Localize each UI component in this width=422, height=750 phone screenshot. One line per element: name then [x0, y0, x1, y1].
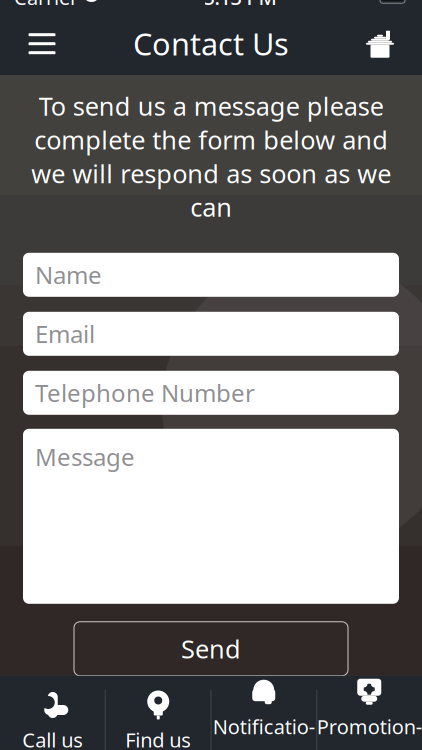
button[interactable]: Name: [23, 253, 399, 297]
staticText: Contact Us: [133, 23, 289, 64]
staticText: Call us: [22, 726, 83, 750]
staticText: Telephone Number: [35, 377, 255, 409]
button[interactable]: Notifications: [211, 665, 316, 750]
button[interactable]: Home: [352, 16, 408, 72]
staticText: Send: [181, 632, 241, 666]
button[interactable]: Find us: [105, 678, 211, 750]
staticText: 5:13 PM: [203, 0, 276, 10]
staticText: Notifications: [213, 713, 315, 750]
staticText: Promotions: [317, 713, 422, 750]
button[interactable]: Menu: [14, 16, 70, 72]
staticText: Email: [35, 318, 95, 350]
staticText: Name: [35, 259, 102, 291]
button[interactable]: Promotions: [316, 665, 422, 750]
staticText: Message: [35, 441, 135, 473]
staticText: Carrier: [14, 0, 78, 10]
button[interactable]: Call us: [0, 678, 105, 750]
button[interactable]: Send: [74, 622, 348, 676]
button[interactable]: Message: [23, 429, 399, 604]
staticText: To send us a message please complete the…: [31, 89, 391, 224]
staticText: Find us: [125, 726, 191, 750]
button[interactable]: Telephone Number: [23, 371, 399, 415]
button[interactable]: Email: [23, 312, 399, 356]
